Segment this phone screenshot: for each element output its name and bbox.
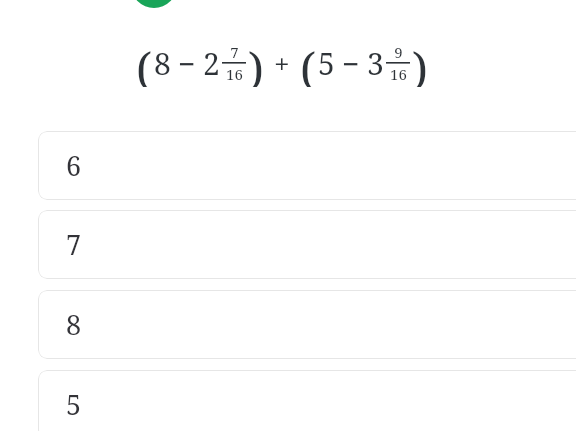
staticText: 7 <box>230 42 239 62</box>
staticText: 2 <box>203 43 220 84</box>
staticText: ( <box>136 37 152 87</box>
staticText: 8 <box>66 306 82 343</box>
staticText: ) <box>248 37 264 87</box>
staticText: 16 <box>226 64 243 84</box>
staticText: + <box>274 44 290 82</box>
other: Profile avatar <box>131 0 177 8</box>
staticText: − <box>178 43 196 84</box>
staticText: 5 <box>66 386 82 423</box>
button[interactable]: 8 <box>38 290 576 359</box>
staticText: 9 <box>394 42 403 62</box>
staticText: 3 <box>367 43 384 84</box>
staticText: 7 <box>66 226 82 263</box>
staticText: ) <box>412 37 428 87</box>
button[interactable]: 5 <box>38 370 576 431</box>
button[interactable]: 7 <box>38 210 576 279</box>
staticText: ( <box>300 37 316 87</box>
staticText: 5 <box>318 43 335 84</box>
staticText: 16 <box>390 64 407 84</box>
staticText: − <box>342 43 360 84</box>
button[interactable]: 6 <box>38 131 576 200</box>
staticText: 6 <box>66 147 82 184</box>
staticText: 8 <box>154 43 171 84</box>
